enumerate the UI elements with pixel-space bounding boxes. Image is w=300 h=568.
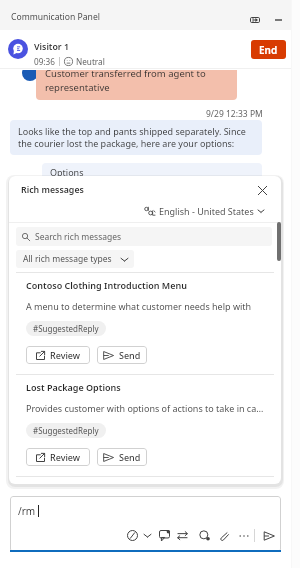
button[interactable]: End <box>251 40 286 59</box>
button[interactable]: Rich messages <box>195 526 214 545</box>
button[interactable]: English - United States <box>142 205 266 217</box>
staticText: 9/29 12:33 PM <box>206 108 263 120</box>
staticText: Provides customer with options of action… <box>26 402 267 414</box>
button[interactable]: Transfer chat <box>173 526 192 545</box>
staticText: Options <box>50 166 84 178</box>
staticText: Communication Panel <box>11 11 100 23</box>
button[interactable]: Review <box>26 448 90 466</box>
button[interactable]: Emoji picker <box>138 526 157 545</box>
button[interactable]: All rich message types <box>16 250 134 268</box>
button[interactable]: Quick replies <box>155 526 174 545</box>
staticText: End <box>259 43 278 57</box>
staticText: 09:36 <box>34 56 55 67</box>
staticText: Review <box>50 349 81 361</box>
staticText: Visitor 1 <box>34 41 70 53</box>
button[interactable]: Send message <box>259 526 278 545</box>
staticText: Customer transferred from agent to repre… <box>45 70 228 93</box>
button[interactable]: Lost Package Options <box>9 375 281 476</box>
staticText: Send <box>119 451 141 463</box>
button[interactable]: Send <box>97 346 147 364</box>
button[interactable]: More options <box>234 526 253 545</box>
staticText: Looks like the top and pants shipped sep… <box>18 125 254 150</box>
staticText: Lost Package Options <box>26 381 121 393</box>
staticText: English - United States <box>159 205 254 217</box>
button[interactable]: Close <box>253 181 271 199</box>
button[interactable]: Send <box>97 448 147 466</box>
button[interactable]: Minimize <box>268 10 288 30</box>
button[interactable]: Attach file <box>214 526 233 545</box>
button[interactable]: Review <box>26 346 90 364</box>
staticText: #SuggestedReply <box>33 323 99 334</box>
staticText: #SuggestedReply <box>33 425 99 436</box>
button[interactable]: Dock panel <box>245 10 265 30</box>
button[interactable]: Contoso Clothing Introduction Menu <box>9 273 281 374</box>
button[interactable]: Search rich messages <box>16 227 272 246</box>
staticText: Search rich messages <box>35 231 122 243</box>
staticText: A menu to determine what customer needs … <box>26 300 252 312</box>
staticText: Neutral <box>76 56 105 67</box>
staticText: /rm <box>18 504 36 518</box>
staticText: Send <box>119 349 141 361</box>
staticText: Review <box>50 451 81 463</box>
button[interactable]: Emoji <box>123 526 142 545</box>
staticText: All rich message types <box>23 253 112 265</box>
staticText: Rich messages <box>21 184 84 196</box>
staticText: Contoso Clothing Introduction Menu <box>26 279 187 291</box>
